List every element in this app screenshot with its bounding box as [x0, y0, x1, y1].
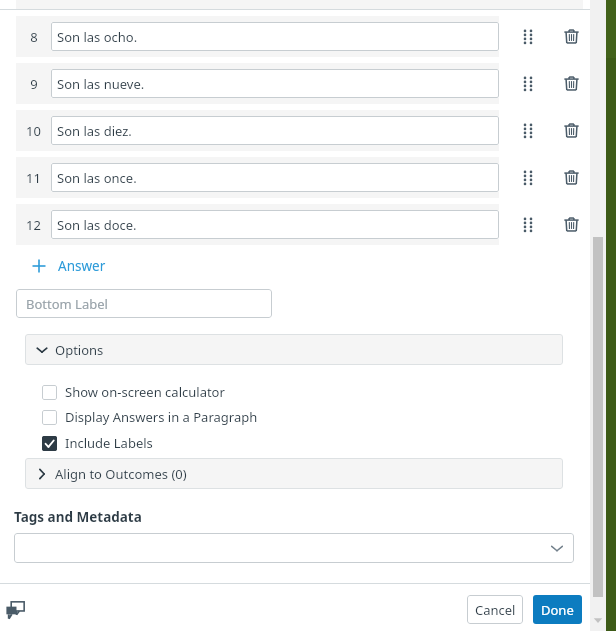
button[interactable]: Son las diez. [51, 116, 499, 145]
staticText: Align to Outcomes (0) [55, 465, 187, 483]
staticText: Son las once. [57, 169, 137, 187]
staticText: Son las diez. [57, 122, 132, 140]
button[interactable]: Son las doce. [51, 210, 499, 239]
button[interactable] [16, 16, 499, 57]
staticText: Son las doce. [57, 216, 137, 234]
staticText: Options [55, 341, 104, 359]
button[interactable] [16, 157, 499, 198]
button[interactable]: Bottom Label [16, 289, 272, 318]
button[interactable]: Reorder answer 11 [510, 157, 546, 198]
staticText: Done [541, 601, 574, 619]
staticText: Display Answers in a Paragraph [65, 408, 258, 426]
button[interactable]: Answer [28, 254, 106, 278]
staticText: 11 [26, 169, 41, 187]
staticText: Bottom Label [26, 295, 108, 313]
staticText: Tags and Metadata [14, 508, 142, 526]
button[interactable]: Reorder answer 8 [510, 16, 546, 57]
button[interactable]: Delete answer 9 [551, 63, 591, 104]
button[interactable]: Son las once. [51, 163, 499, 192]
button[interactable]: Cancel [467, 595, 523, 624]
button[interactable]: Align to Outcomes (0) [25, 458, 563, 489]
button[interactable]: Tags and Metadata dropdown [14, 533, 574, 563]
button[interactable]: Delete answer 11 [551, 157, 591, 198]
button[interactable]: Delete answer 10 [551, 110, 591, 151]
button[interactable]: Comments [4, 598, 28, 622]
button[interactable] [16, 110, 499, 151]
staticText: Show on-screen calculator [65, 383, 225, 401]
button[interactable]: Son las ocho. [51, 22, 499, 51]
staticText: Cancel [475, 601, 516, 619]
button[interactable]: Display Answers in a Paragraph [42, 406, 258, 428]
staticText: 10 [26, 122, 41, 140]
button[interactable]: Done [533, 595, 582, 624]
staticText: Son las nueve. [57, 75, 145, 93]
button[interactable]: Include Labels [42, 432, 153, 454]
staticText: 8 [30, 28, 38, 46]
button[interactable]: Reorder answer 10 [510, 110, 546, 151]
button[interactable]: Reorder answer 12 [510, 204, 546, 245]
staticText: Son las ocho. [57, 28, 138, 46]
staticText: Include Labels [65, 434, 153, 452]
button[interactable]: Reorder answer 9 [510, 63, 546, 104]
staticText: 9 [30, 75, 38, 93]
button[interactable]: Options [25, 334, 563, 365]
staticText: 12 [26, 216, 41, 234]
button[interactable]: Son las nueve. [51, 69, 499, 98]
button[interactable]: Show on-screen calculator [42, 381, 225, 403]
button[interactable] [16, 63, 499, 104]
button[interactable]: Delete answer 12 [551, 204, 591, 245]
button[interactable] [16, 204, 499, 245]
staticText: Answer [58, 257, 106, 275]
button[interactable]: Delete answer 8 [551, 16, 591, 57]
